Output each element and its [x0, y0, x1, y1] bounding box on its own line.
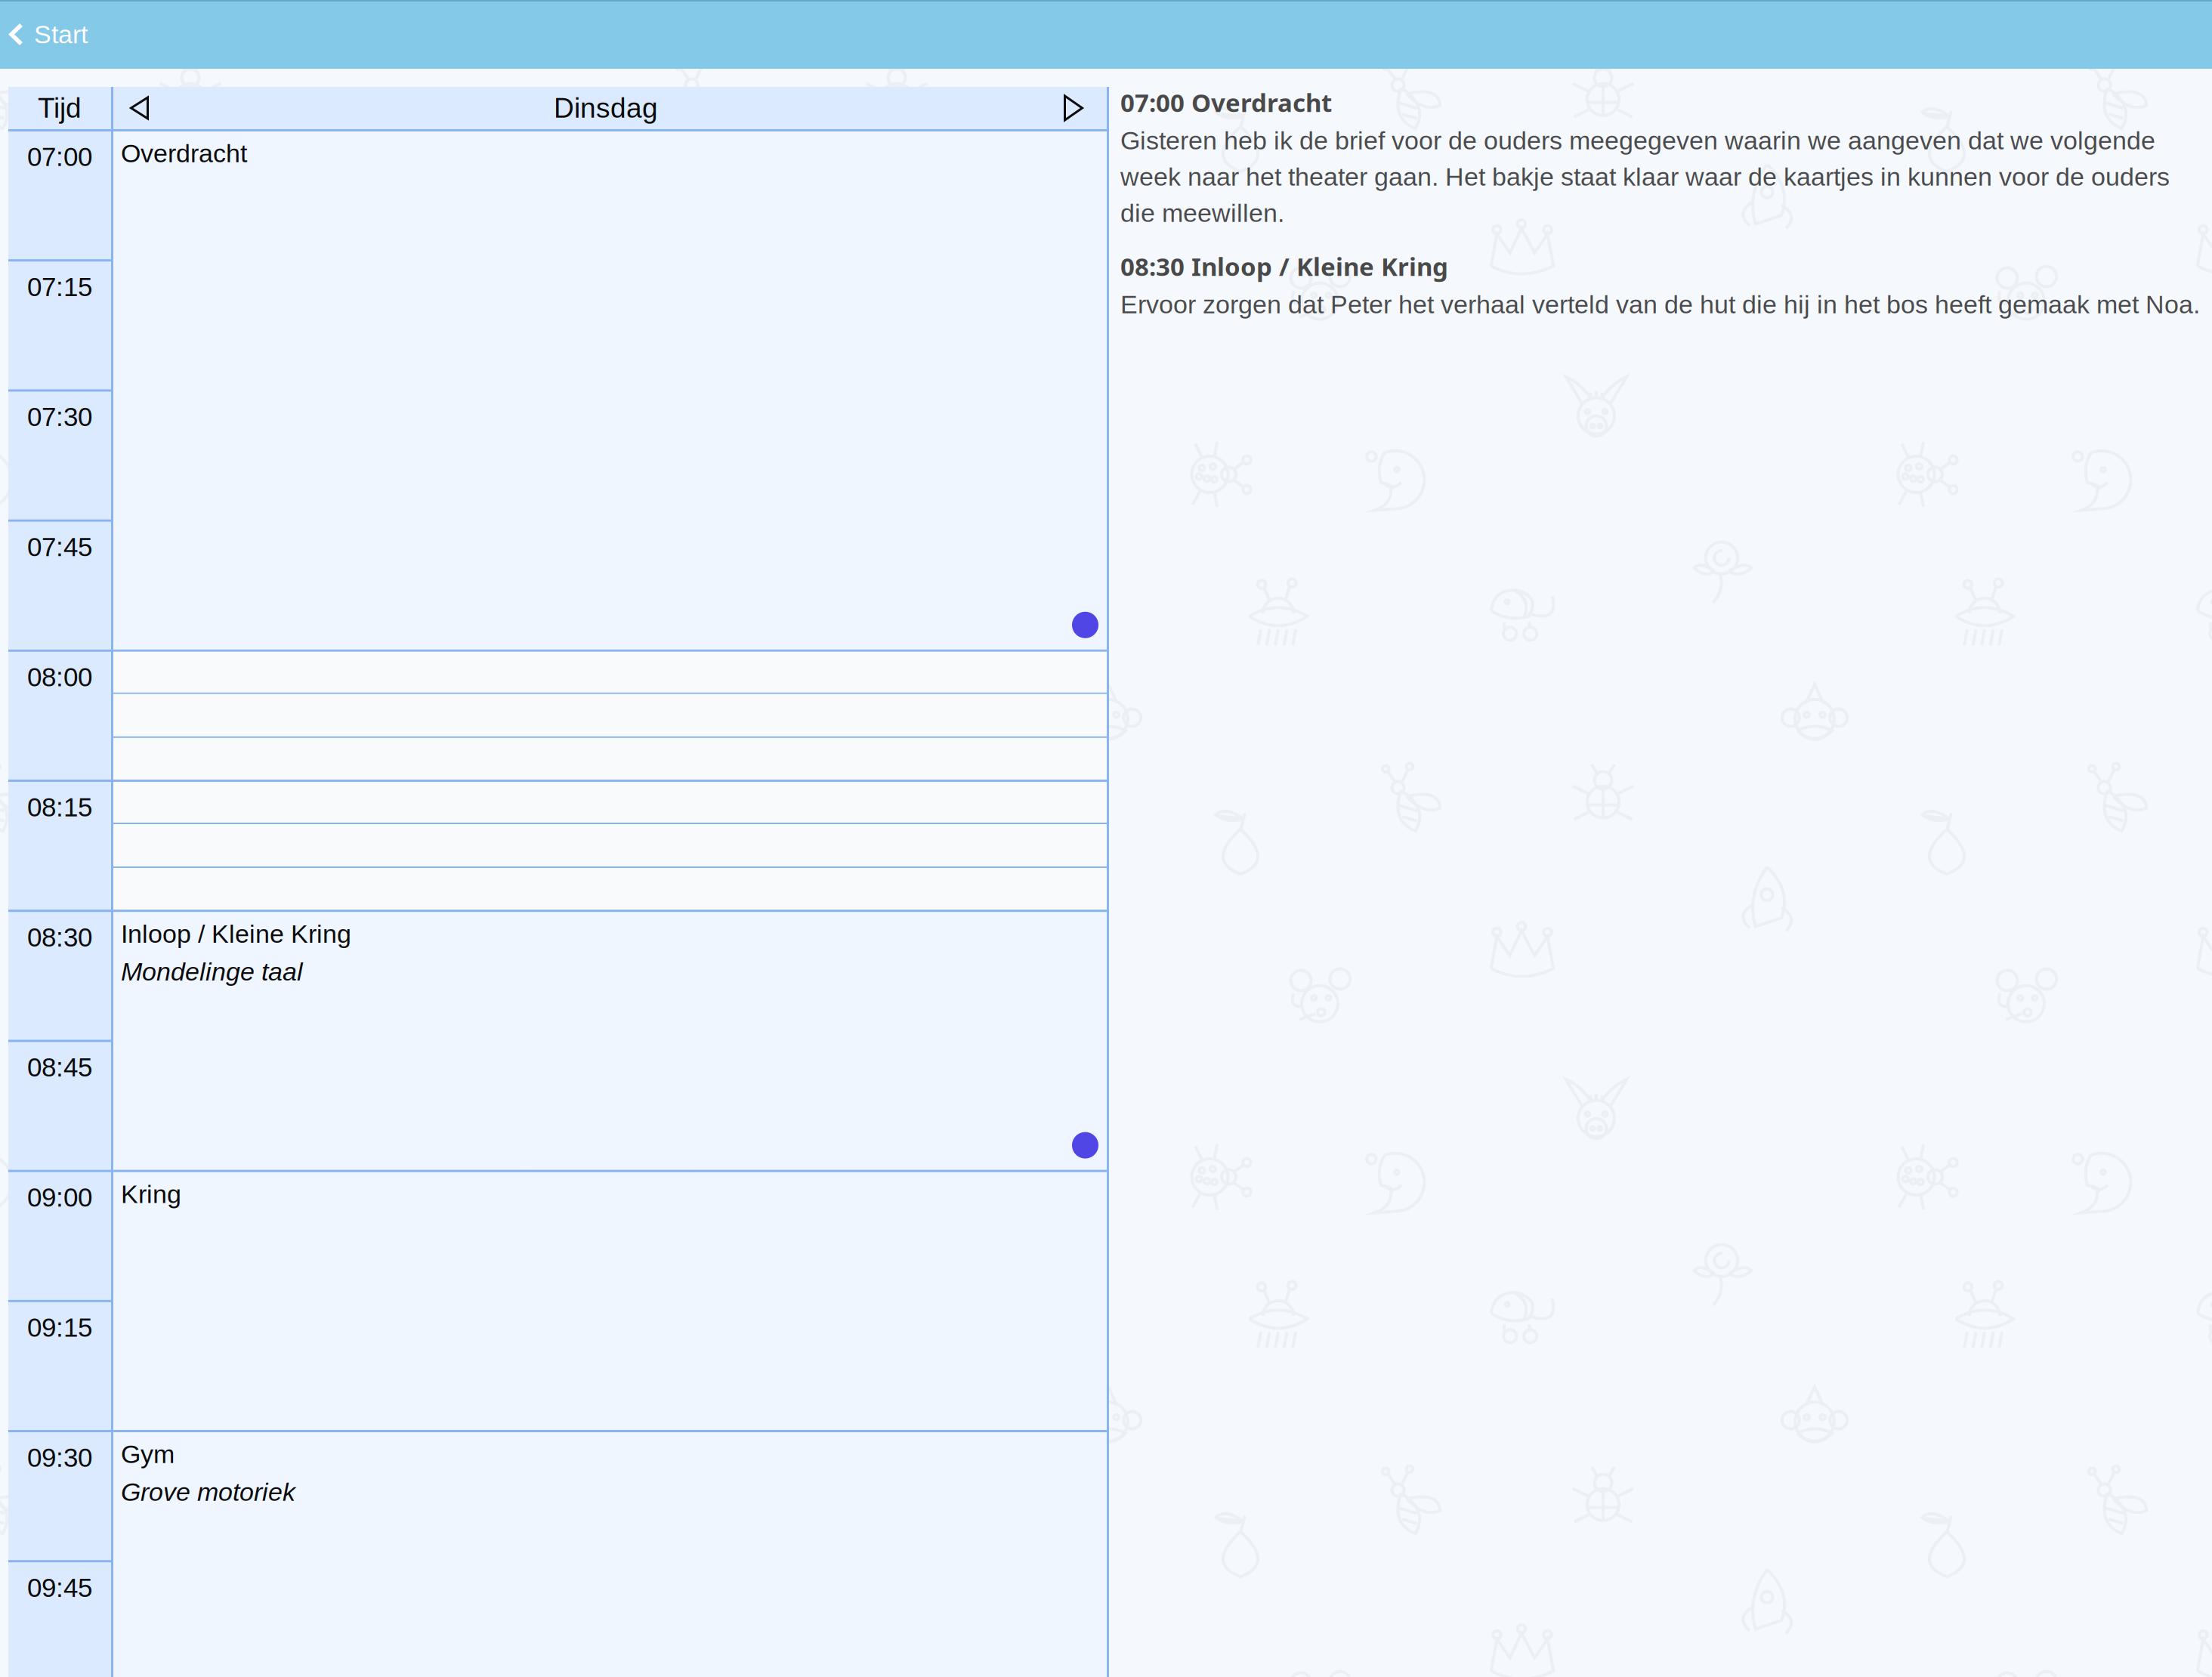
staticText: Overdracht	[121, 139, 247, 168]
button[interactable]: 09:30	[8, 1430, 111, 1560]
staticText: 09:30	[27, 1443, 92, 1472]
staticText: 07:15	[27, 272, 92, 302]
button[interactable]: 09:45	[8, 1560, 111, 1677]
staticText: Kring	[121, 1180, 181, 1208]
staticText: week naar het theater gaan. Het bakje st…	[1120, 162, 2170, 191]
staticText: Inloop / Kleine Kring	[121, 919, 351, 948]
staticText: 07:00 Overdracht	[1120, 85, 1332, 119]
button[interactable]: Start	[0, 0, 101, 69]
staticText: 07:45	[27, 532, 92, 562]
staticText: 09:45	[27, 1573, 92, 1602]
staticText: 08:00	[27, 662, 92, 692]
button[interactable]: 08:45	[8, 1040, 111, 1170]
button[interactable]: Gym	[113, 1430, 1107, 1677]
button[interactable]: 07:30	[8, 389, 111, 519]
staticText: Start	[34, 20, 88, 49]
button[interactable]: Leeg tijdvak	[113, 780, 1107, 910]
staticText: 09:00	[27, 1183, 92, 1212]
button[interactable]: Kring	[113, 1170, 1107, 1430]
button[interactable]: 07:15	[8, 259, 111, 389]
button[interactable]: 08:15	[8, 780, 111, 910]
staticText: Dinsdag	[554, 92, 658, 124]
staticText: 07:00	[27, 142, 92, 172]
staticText: Tijd	[38, 92, 82, 124]
staticText: 09:15	[27, 1313, 92, 1342]
button[interactable]: Leeg tijdvak	[113, 649, 1107, 780]
staticText: die meewillen.	[1120, 199, 1284, 227]
button[interactable]: Vorige dag	[113, 87, 165, 129]
button[interactable]: Overdracht	[113, 129, 1107, 649]
button[interactable]: 09:00	[8, 1170, 111, 1300]
staticText: 08:15	[27, 792, 92, 822]
button[interactable]: 07:45	[8, 519, 111, 649]
staticText: 08:45	[27, 1053, 92, 1082]
staticText: Grove motoriek	[121, 1478, 295, 1506]
button[interactable]: Volgende dag	[1046, 87, 1107, 129]
button[interactable]: 08:30	[8, 910, 111, 1040]
button[interactable]: 08:00	[8, 649, 111, 780]
staticText: Gisteren heb ik de brief voor de ouders …	[1120, 126, 2155, 155]
button[interactable]: Inloop / Kleine Kring	[113, 910, 1107, 1170]
staticText: Mondelinge taal	[121, 957, 303, 986]
staticText: 07:30	[27, 402, 92, 432]
staticText: 08:30 Inloop / Kleine Kring	[1120, 249, 1448, 283]
staticText: 08:30	[27, 923, 92, 952]
button[interactable]: 07:00	[8, 129, 111, 259]
staticText: Gym	[121, 1440, 175, 1469]
button[interactable]: 09:15	[8, 1300, 111, 1430]
staticText: Ervoor zorgen dat Peter het verhaal vert…	[1120, 290, 2200, 319]
